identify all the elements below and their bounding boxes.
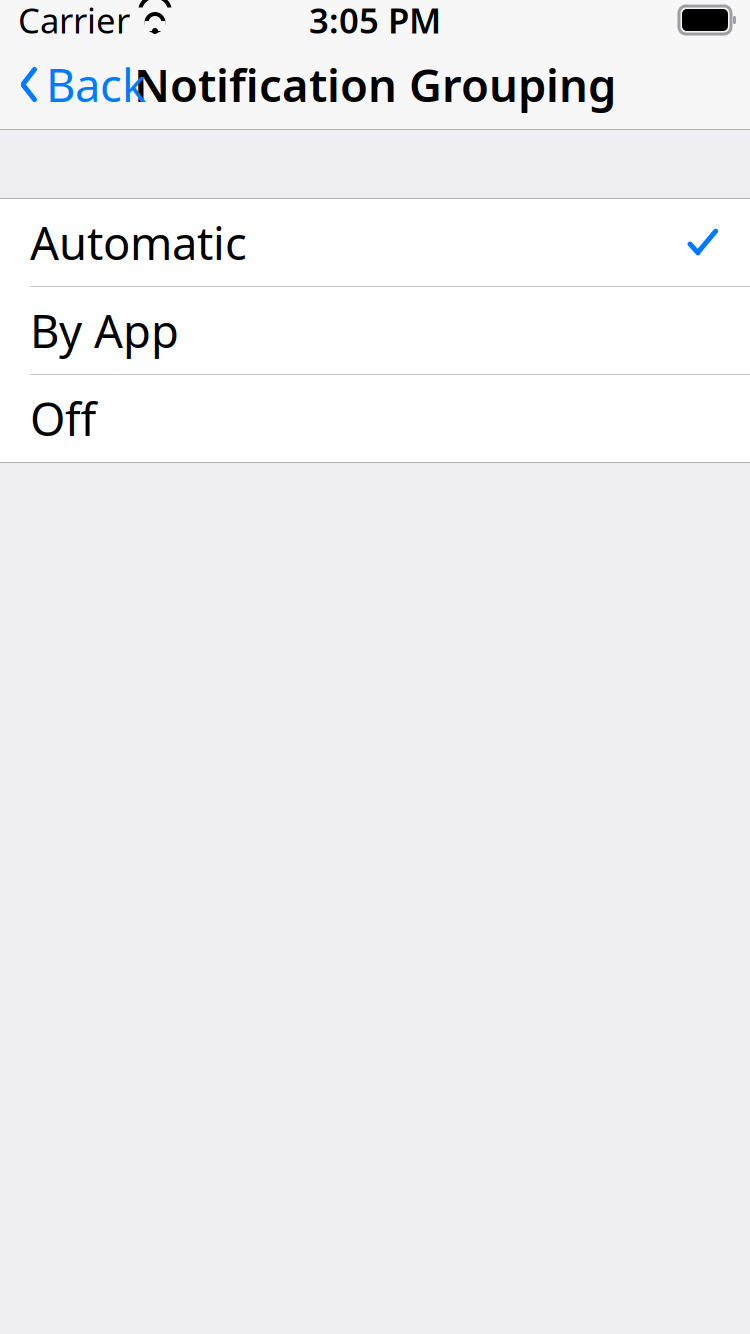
button[interactable]: Back xyxy=(0,42,156,127)
staticText: Off xyxy=(30,388,96,449)
staticText: Notification Grouping xyxy=(134,54,616,115)
staticText: Automatic xyxy=(30,212,247,273)
button[interactable]: Automatic xyxy=(0,199,750,286)
button[interactable]: Off xyxy=(0,375,750,462)
staticText: Back xyxy=(46,54,146,115)
staticText: By App xyxy=(30,300,179,361)
button[interactable]: By App xyxy=(0,287,750,374)
staticText: 3:05 PM xyxy=(309,0,441,43)
staticText: Carrier xyxy=(18,0,130,43)
